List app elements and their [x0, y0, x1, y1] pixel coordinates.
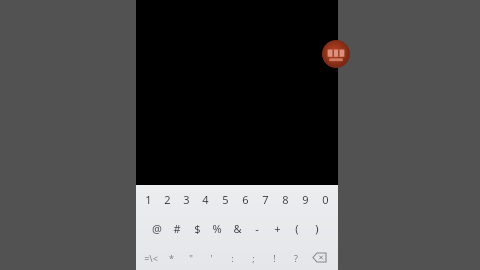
staticText: $: [194, 221, 201, 236]
button[interactable]: 7: [255, 185, 275, 214]
button[interactable]: (: [287, 214, 307, 243]
staticText: -: [255, 221, 259, 236]
button[interactable]: 0: [315, 185, 335, 214]
staticText: :: [231, 252, 234, 264]
staticText: =\<: [144, 252, 158, 264]
staticText: ': [210, 252, 213, 264]
button[interactable]: !: [264, 243, 285, 270]
button[interactable]: 5: [215, 185, 235, 214]
button[interactable]: 3: [177, 185, 196, 214]
staticText: @: [152, 221, 162, 236]
staticText: !: [273, 252, 276, 264]
button[interactable]: =\<: [141, 243, 161, 270]
staticText: 1: [145, 192, 152, 207]
button[interactable]: %: [207, 214, 227, 243]
staticText: 4: [202, 192, 209, 207]
staticText: *: [169, 252, 174, 264]
button[interactable]: #: [167, 214, 187, 243]
staticText: 2: [164, 192, 171, 207]
button[interactable]: 6: [235, 185, 255, 214]
button[interactable]: @: [147, 214, 167, 243]
button[interactable]: +: [267, 214, 287, 243]
staticText: 7: [262, 192, 269, 207]
button[interactable]: $: [187, 214, 207, 243]
staticText: 6: [242, 192, 249, 207]
button[interactable]: 1: [139, 185, 158, 214]
button[interactable]: &: [227, 214, 247, 243]
staticText: 5: [222, 192, 229, 207]
staticText: ": [189, 252, 193, 264]
staticText: (: [295, 221, 299, 236]
button[interactable]: 8: [275, 185, 295, 214]
button[interactable]: ?: [285, 243, 306, 270]
staticText: ): [315, 221, 319, 236]
button[interactable]: *: [161, 243, 181, 270]
button[interactable]: :: [222, 243, 243, 270]
staticText: %: [212, 221, 222, 236]
button[interactable]: -: [247, 214, 267, 243]
button[interactable]: ): [307, 214, 327, 243]
staticText: 0: [322, 192, 329, 207]
button[interactable]: ": [181, 243, 201, 270]
staticText: 9: [302, 192, 309, 207]
staticText: #: [173, 221, 181, 236]
button[interactable]: 2: [158, 185, 177, 214]
button[interactable]: 4: [196, 185, 215, 214]
button[interactable]: 9: [295, 185, 315, 214]
staticText: ?: [294, 252, 298, 264]
staticText: &: [233, 221, 242, 236]
staticText: 8: [282, 192, 289, 207]
button[interactable]: ;: [243, 243, 264, 270]
button[interactable]: App logo: [322, 40, 350, 68]
staticText: ;: [252, 252, 255, 264]
button[interactable]: ': [201, 243, 222, 270]
staticText: +: [274, 221, 281, 236]
staticText: 3: [183, 192, 190, 207]
button[interactable]: Backspace: [306, 243, 333, 270]
